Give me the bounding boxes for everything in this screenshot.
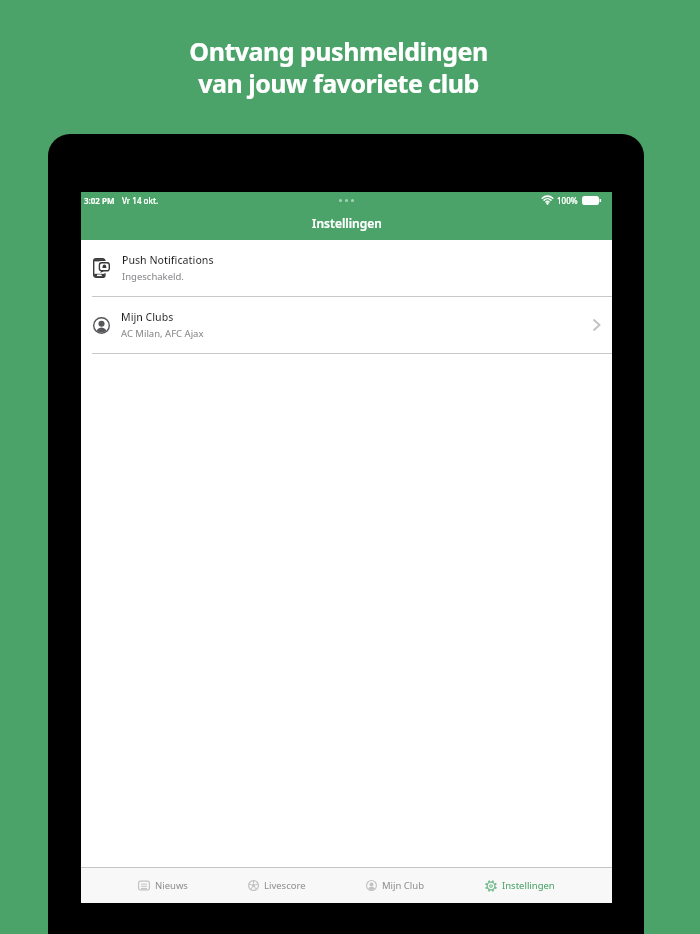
staticText: Vr 14 okt. (122, 195, 159, 206)
button[interactable]: Push Notifications (81, 240, 612, 296)
button[interactable]: Nieuws (138, 879, 188, 892)
staticText: Instellingen (312, 215, 382, 231)
staticText: Ontvang pushmeldingen van jouw favoriete… (189, 34, 488, 100)
staticText: 3:02 PM (84, 195, 115, 206)
staticText: Mijn Clubs (121, 310, 174, 324)
staticText: Mijn Club (382, 879, 425, 892)
button[interactable]: Mijn Club (366, 879, 425, 892)
staticText: Ingeschakeld. (122, 270, 184, 283)
button[interactable]: Instellingen (485, 879, 555, 892)
staticText: AC Milan, AFC Ajax (121, 327, 204, 340)
button[interactable]: Livescore (248, 879, 306, 892)
button[interactable]: Mijn Clubs (81, 297, 612, 353)
staticText: 100% (557, 195, 578, 206)
staticText: Livescore (264, 879, 306, 892)
staticText: Instellingen (502, 879, 555, 892)
staticText: Push Notifications (122, 253, 214, 267)
staticText: Nieuws (155, 879, 188, 892)
